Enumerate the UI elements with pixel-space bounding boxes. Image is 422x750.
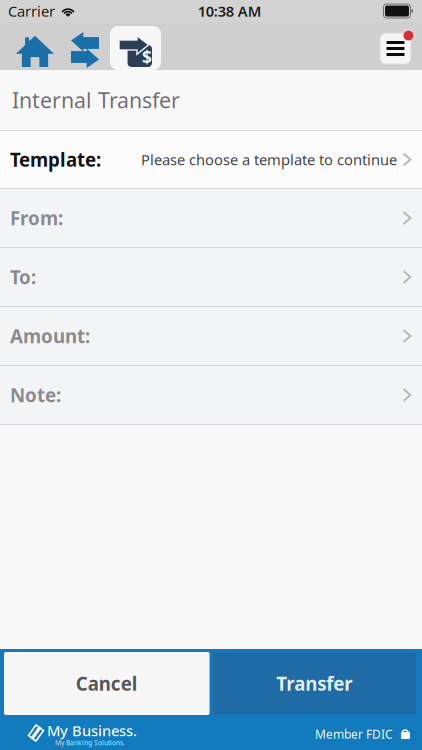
button[interactable]: Home xyxy=(12,22,68,70)
button[interactable]: Menu xyxy=(380,30,414,64)
staticText: Cancel xyxy=(76,671,138,696)
button[interactable]: To: xyxy=(0,248,422,307)
button[interactable]: From: xyxy=(0,189,422,248)
staticText: Member FDIC xyxy=(315,726,393,742)
button[interactable]: Transfers xyxy=(68,22,110,70)
button[interactable]: Internal Transfer xyxy=(110,22,161,70)
staticText: Internal Transfer xyxy=(12,86,180,114)
button[interactable]: Transfer xyxy=(212,653,416,714)
staticText: To: xyxy=(10,265,36,289)
button[interactable]: Note: xyxy=(0,366,422,425)
staticText: From: xyxy=(10,206,63,230)
button[interactable]: Amount: xyxy=(0,307,422,366)
staticText: My Banking Solutions. xyxy=(55,738,125,747)
staticText: Note: xyxy=(10,383,61,407)
staticText: Carrier xyxy=(8,1,55,21)
staticText: Transfer xyxy=(276,671,352,696)
button[interactable]: Cancel xyxy=(5,653,208,714)
button[interactable]: Template: xyxy=(0,131,422,189)
staticText: Please choose a template to continue xyxy=(141,150,397,169)
staticText: $ xyxy=(142,45,152,68)
staticText: 10:38 AM xyxy=(198,1,262,21)
staticText: Template: xyxy=(10,147,101,172)
staticText: My Business. xyxy=(47,721,137,740)
staticText: Amount: xyxy=(10,324,90,348)
